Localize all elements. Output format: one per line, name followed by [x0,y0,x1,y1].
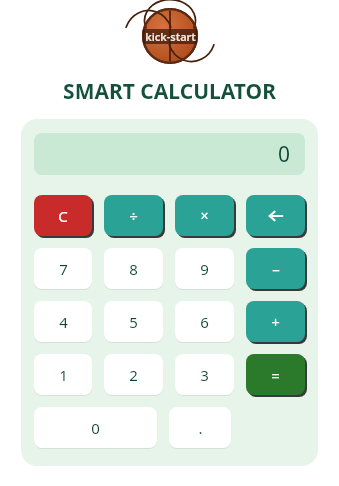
staticText: 4 [59,312,68,332]
staticText: ÷ [129,206,138,226]
button[interactable]: ÷ [104,195,163,236]
button[interactable]: 7 [34,248,92,289]
button[interactable]: 9 [175,248,234,289]
staticText: 2 [129,365,138,385]
staticText: kick-start [145,29,196,44]
staticText: SMART CALCULATOR [63,77,276,106]
staticText: 3 [200,365,209,385]
staticText: 7 [59,259,68,279]
staticText: – [272,259,280,279]
button[interactable]: + [246,301,305,342]
staticText: + [271,312,280,332]
button[interactable]: = [246,354,305,395]
staticText: 8 [129,259,138,279]
button[interactable]: 1 [34,354,92,395]
button[interactable]: 2 [104,354,163,395]
staticText: × [200,206,209,225]
button[interactable]: 6 [175,301,234,342]
button[interactable]: Backspace [246,195,305,236]
button[interactable]: 3 [175,354,234,395]
button[interactable]: × [175,195,234,236]
button[interactable]: 8 [104,248,163,289]
staticText: . [198,418,203,438]
staticText: 0 [278,140,291,169]
staticText: 5 [129,312,138,332]
staticText: 0 [91,418,100,438]
button[interactable]: . [169,407,231,448]
staticText: 9 [200,259,209,279]
staticText: 1 [59,365,68,385]
button[interactable]: 5 [104,301,163,342]
staticText: = [271,365,280,385]
button[interactable]: 4 [34,301,92,342]
button[interactable]: – [246,248,305,289]
staticText: C [58,206,68,226]
staticText: 6 [200,312,209,332]
button[interactable]: 0 [34,407,157,448]
button[interactable]: C [34,195,92,236]
